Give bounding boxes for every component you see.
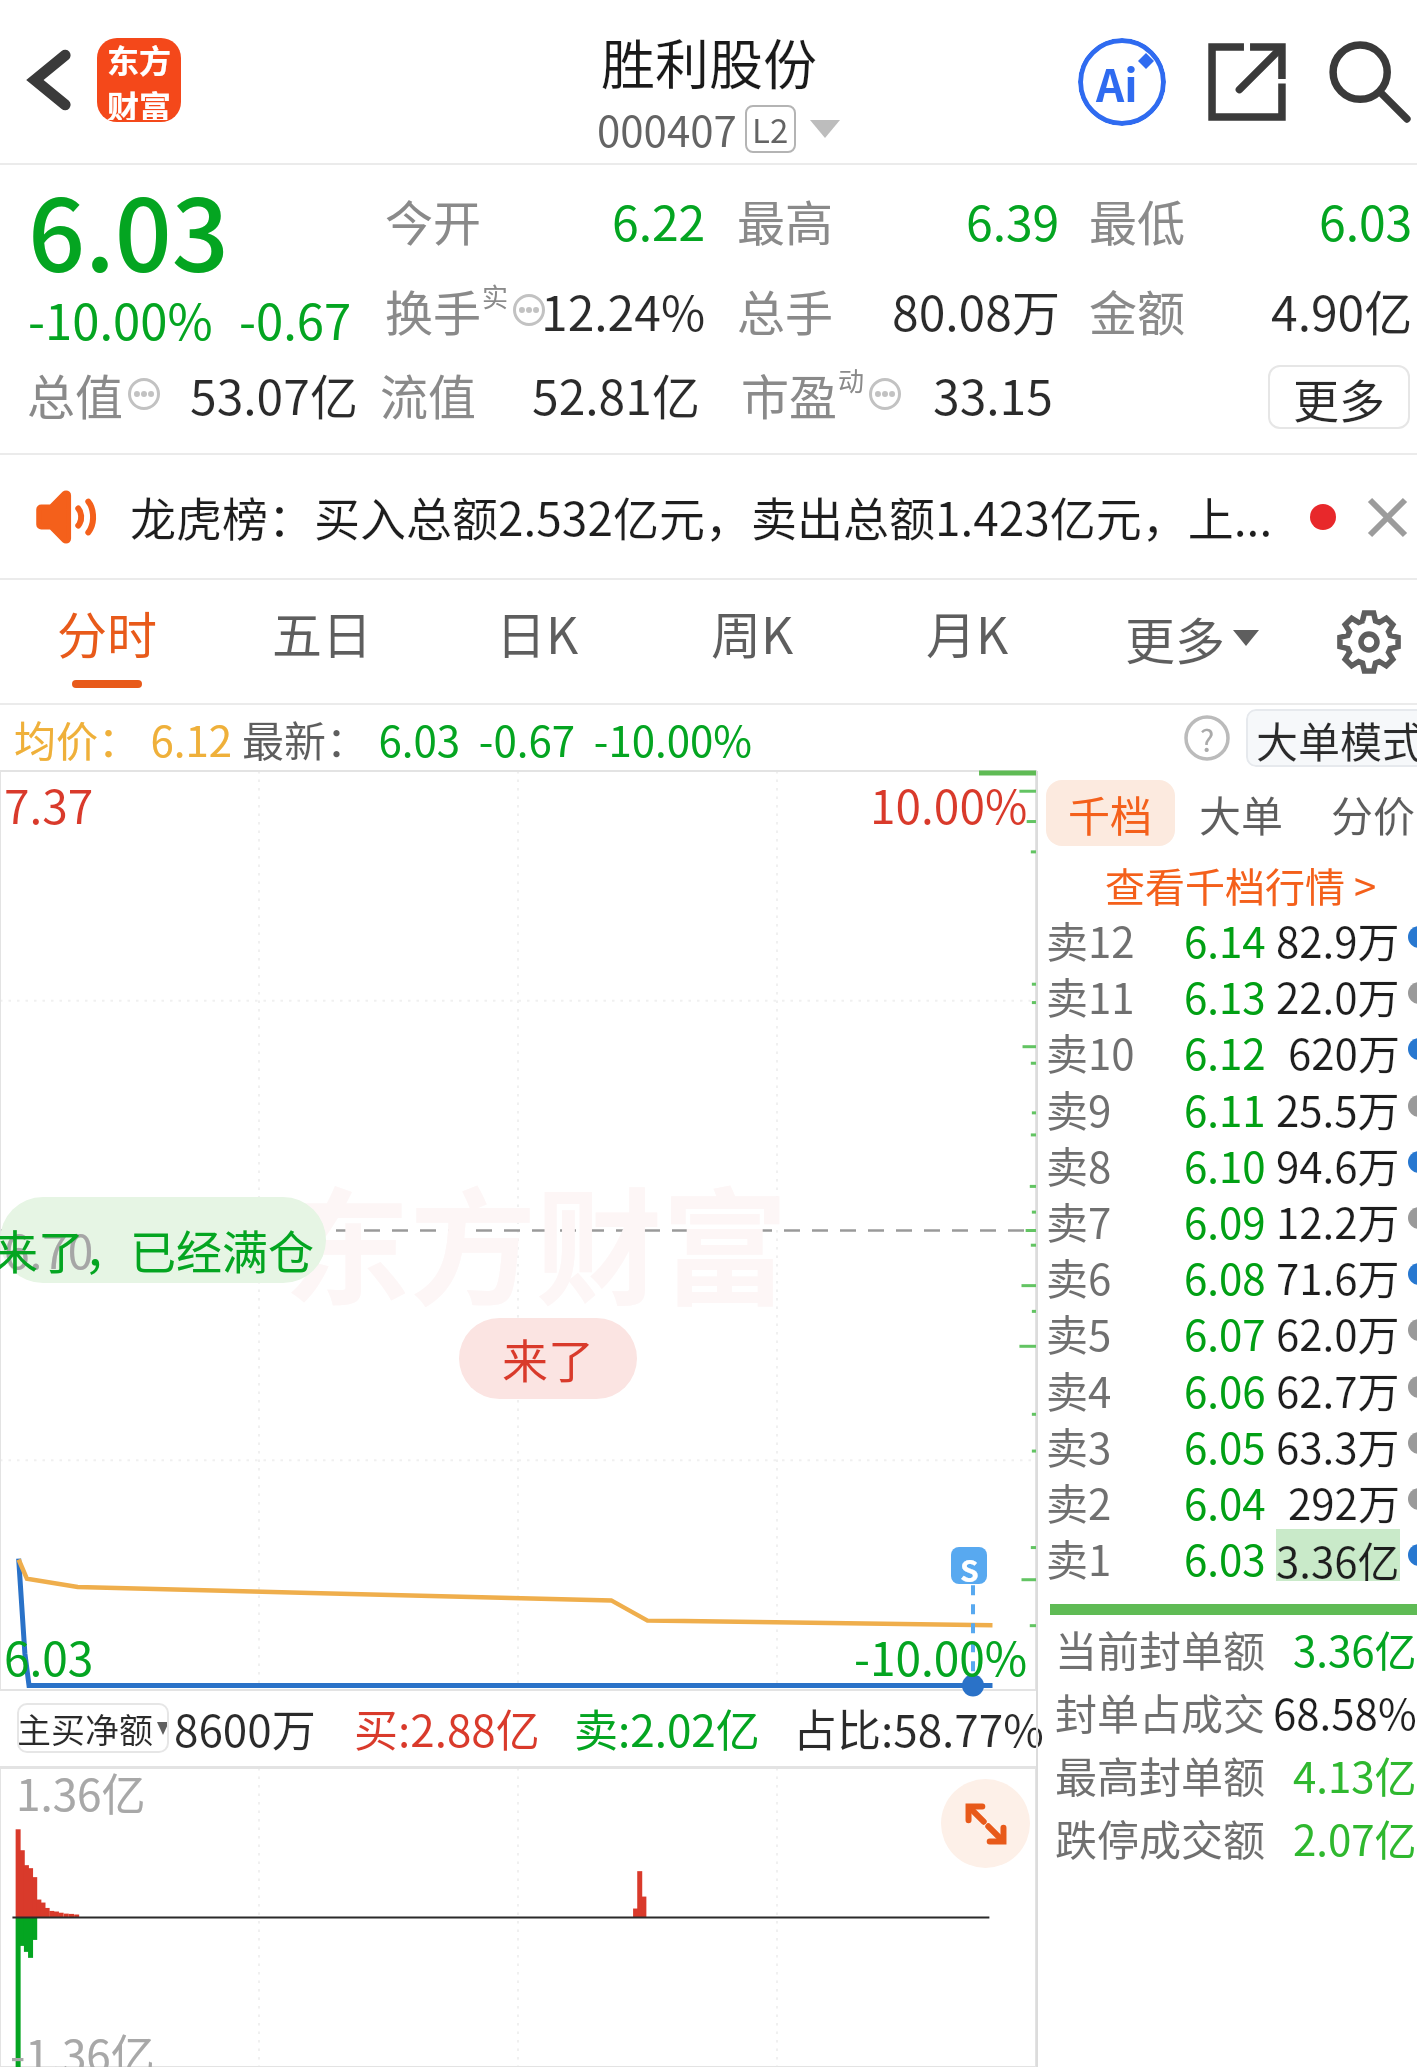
staticText: S [960, 1547, 979, 1584]
staticText: 6.10 [1184, 1134, 1266, 1190]
staticText: 东方财富 [284, 1149, 788, 1331]
button[interactable]: 更多 [1125, 602, 1259, 674]
button[interactable]: 卖7 [1038, 1190, 1417, 1246]
staticText: -10.00% [854, 1623, 1028, 1690]
button[interactable]: 卖5 [1038, 1302, 1417, 1358]
staticText: 94.6万 [1276, 1134, 1400, 1190]
staticText: 卖12 [1046, 909, 1135, 965]
staticText: 跌停成交额 [1055, 1807, 1266, 1868]
button[interactable]: 卖2 [1038, 1471, 1417, 1527]
staticText: 买:2.88亿 [354, 1696, 540, 1760]
staticText: 71.6万 [1276, 1246, 1400, 1302]
staticText: L2 [752, 105, 789, 153]
staticText: Ai [1096, 51, 1138, 115]
staticText: 分价 [1331, 783, 1416, 844]
staticText: 龙虎榜：买入总额2.532亿元，卖出总额1.423亿元，上... [130, 483, 1273, 550]
staticText: 6.12 [141, 708, 242, 769]
staticText: 财富 [107, 82, 172, 120]
staticText: 换手 [385, 275, 482, 345]
button[interactable]: AI assistant [1062, 22, 1182, 142]
button[interactable]: Settings [1309, 582, 1417, 702]
staticText: 最新： [242, 708, 369, 769]
staticText: 68.58% [1273, 1681, 1417, 1742]
staticText: 6.22 [612, 185, 706, 255]
staticText: 卖6 [1046, 1246, 1112, 1302]
staticText: 12.24% [541, 275, 706, 345]
staticText: 月K [926, 596, 1009, 668]
staticText: 6.70 [4, 1216, 94, 1283]
staticText: 主买净额 [17, 1704, 153, 1753]
staticText: 最高封单额 [1055, 1744, 1266, 1805]
staticText: 金额 [1089, 275, 1186, 345]
staticText: 卖10 [1046, 1021, 1135, 1077]
staticText: 周K [711, 596, 794, 668]
button[interactable]: 卖8 [1038, 1134, 1417, 1190]
staticText: 卖4 [1046, 1359, 1112, 1415]
staticText: 52.81亿 [532, 359, 700, 429]
button[interactable]: 周K [645, 580, 859, 703]
staticText: 流值 [380, 359, 477, 429]
button[interactable]: 卖10 [1038, 1021, 1417, 1077]
button[interactable]: 龙虎榜：买入总额2.532亿元，卖出总额1.423亿元，上... [0, 455, 1417, 578]
staticText: 22.0万 [1276, 965, 1400, 1021]
staticText: 日K [496, 596, 579, 668]
staticText: 查看千档行情 > [1105, 856, 1377, 912]
button[interactable]: Fullscreen [941, 1779, 1030, 1868]
button[interactable]: 五日 [215, 580, 429, 703]
button[interactable]: 月K [860, 580, 1074, 703]
button[interactable]: Share [1187, 22, 1307, 142]
button[interactable]: 卖1 [1038, 1527, 1417, 1583]
staticText: 7.37 [4, 771, 94, 838]
staticText: 6.03 -0.67 -10.00% [369, 708, 752, 769]
staticText: 最低 [1089, 185, 1186, 255]
staticText: 分时 [57, 596, 157, 668]
staticText: 来了，已经满仓 [0, 1216, 314, 1283]
staticText: 1.36亿 [16, 1760, 146, 1824]
button[interactable]: 更多 [1268, 365, 1410, 429]
button[interactable]: Search [1310, 22, 1417, 142]
button[interactable]: 查看千档行情 > [1098, 856, 1383, 912]
staticText: 2.07亿 [1293, 1807, 1417, 1868]
staticText: 6.03 [1184, 1527, 1266, 1583]
button[interactable]: 卖11 [1038, 965, 1417, 1021]
button[interactable]: Help [1178, 709, 1236, 767]
staticText: -10.00% [28, 283, 213, 354]
staticText: 6.07 [1184, 1302, 1266, 1358]
button[interactable]: 千档 [1046, 780, 1175, 846]
button[interactable]: 卖12 [1038, 909, 1417, 965]
staticText: 33.15 [933, 359, 1053, 429]
staticText: 五日 [272, 596, 372, 668]
staticText: 4.13亿 [1293, 1744, 1417, 1805]
staticText: 千档 [1068, 783, 1153, 844]
button[interactable]: 大单 [1199, 780, 1284, 846]
button[interactable]: Back [2, 32, 98, 128]
staticText: 当前封单额 [1055, 1618, 1266, 1679]
staticText: 卖5 [1046, 1302, 1112, 1358]
button[interactable]: 卖6 [1038, 1246, 1417, 1302]
staticText: 6.11 [1184, 1078, 1266, 1134]
staticText: 8600万 [174, 1696, 316, 1760]
button[interactable]: 卖4 [1038, 1359, 1417, 1415]
button[interactable]: 分时 [0, 580, 214, 703]
button[interactable]: Close [1352, 482, 1417, 552]
staticText: 大单模式 [1256, 709, 1417, 767]
button[interactable]: 大单模式 [1256, 709, 1417, 767]
staticText: 80.08万 [892, 275, 1060, 345]
button[interactable]: 卖9 [1038, 1078, 1417, 1134]
staticText: 3.36亿 [1293, 1618, 1417, 1679]
button[interactable]: 卖3 [1038, 1415, 1417, 1471]
staticText: 6.12 [1184, 1021, 1266, 1077]
staticText: 占比:58.77% [793, 1696, 1044, 1760]
button[interactable]: 日K [430, 580, 644, 703]
staticText: 实 [482, 277, 509, 315]
staticText: 12.2万 [1276, 1190, 1400, 1246]
staticText: 6.03 [1319, 185, 1413, 255]
button[interactable]: East Money [97, 38, 181, 122]
staticText: 6.04 [1184, 1471, 1266, 1527]
staticText: 6.03 [4, 1623, 94, 1690]
staticText: 卖3 [1046, 1415, 1112, 1471]
staticText: 6.06 [1184, 1359, 1266, 1415]
button[interactable]: 主买净额 [17, 1703, 169, 1753]
staticText: 82.9万 [1276, 909, 1400, 965]
button[interactable]: 分价 [1331, 780, 1416, 846]
